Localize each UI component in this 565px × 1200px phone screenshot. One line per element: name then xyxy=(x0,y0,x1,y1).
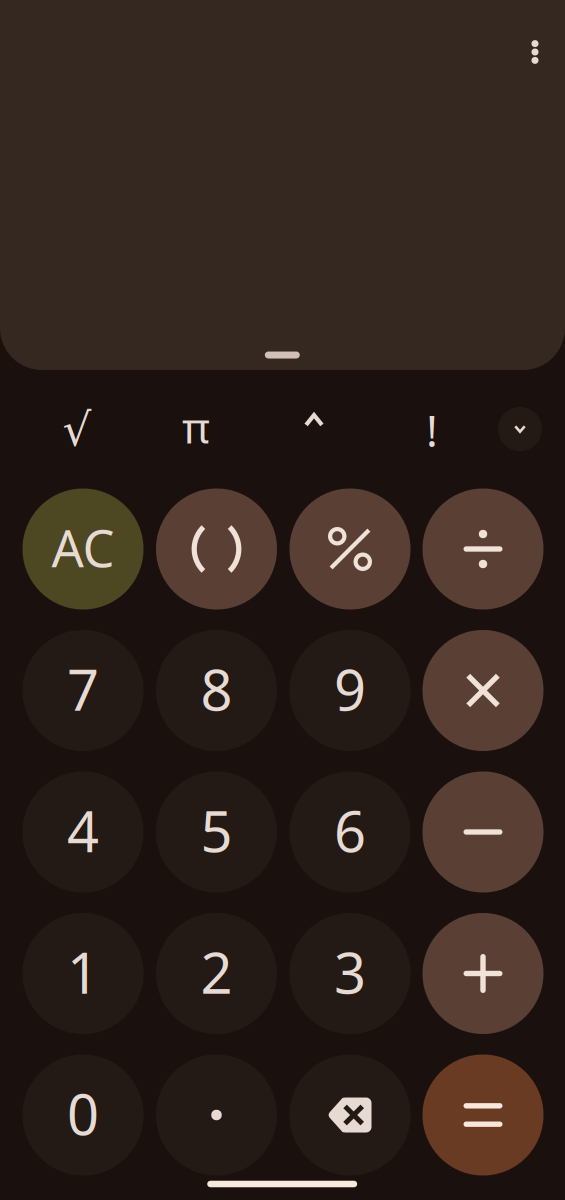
button[interactable]: Parentheses xyxy=(156,488,277,609)
button[interactable]: Power xyxy=(274,389,354,469)
button[interactable]: 3 xyxy=(289,913,410,1034)
button[interactable]: 5 xyxy=(156,771,277,892)
button[interactable]: Factorial xyxy=(392,389,472,469)
staticText: 6 xyxy=(334,793,366,868)
staticText: 9 xyxy=(334,652,366,726)
button[interactable]: Percent xyxy=(289,488,410,609)
button[interactable]: 0 xyxy=(22,1054,143,1175)
button[interactable]: Multiply xyxy=(422,630,543,751)
button[interactable]: 6 xyxy=(289,771,410,892)
button[interactable]: Plus xyxy=(422,913,543,1034)
button[interactable]: 9 xyxy=(289,630,410,751)
staticText: 3 xyxy=(334,935,366,1009)
staticText: ! xyxy=(426,401,438,459)
button[interactable]: Square root xyxy=(37,389,117,469)
button[interactable]: 8 xyxy=(156,630,277,751)
staticText: 5 xyxy=(200,793,232,868)
staticText: 1 xyxy=(67,935,99,1009)
button[interactable]: 1 xyxy=(22,913,143,1034)
staticText: π xyxy=(182,399,210,455)
staticText: AC xyxy=(51,514,114,581)
button[interactable]: AC xyxy=(22,488,143,609)
button[interactable]: 2 xyxy=(156,913,277,1034)
button[interactable]: Equals xyxy=(422,1054,543,1175)
button[interactable]: 7 xyxy=(22,630,143,751)
staticText: √ xyxy=(62,404,91,456)
button[interactable]: Pi xyxy=(156,389,236,469)
button[interactable]: Backspace xyxy=(289,1054,410,1175)
button[interactable]: 4 xyxy=(22,771,143,892)
button[interactable]: Minus xyxy=(422,771,543,892)
staticText: 2 xyxy=(200,935,232,1009)
button[interactable]: Divide xyxy=(422,488,543,609)
staticText: 0 xyxy=(67,1076,99,1151)
button[interactable]: Decimal point xyxy=(156,1054,277,1175)
button[interactable]: Show more functions xyxy=(498,407,542,451)
staticText: 7 xyxy=(67,652,99,726)
staticText: 8 xyxy=(200,652,232,726)
button[interactable]: More options xyxy=(511,28,559,76)
staticText: 4 xyxy=(67,793,99,868)
